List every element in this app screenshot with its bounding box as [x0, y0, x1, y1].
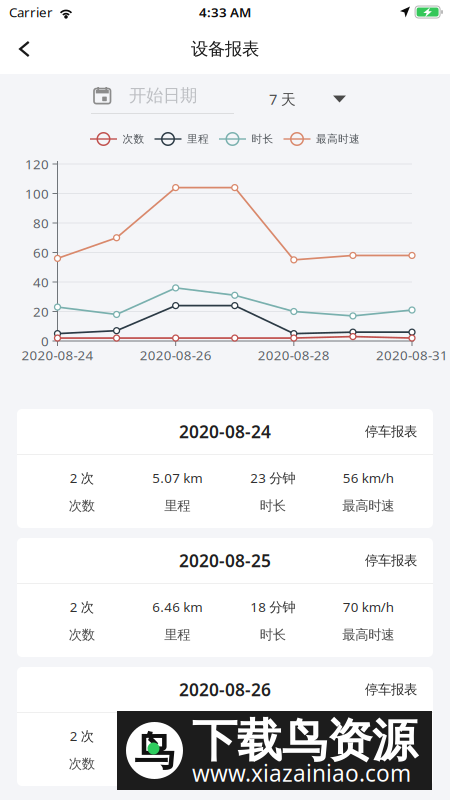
staticText: 开始日期 [129, 85, 197, 106]
staticText: 2 次 [70, 598, 94, 616]
staticText: 停车报表 [365, 681, 417, 698]
staticText: 时长 [260, 498, 286, 514]
staticText: 次数 [69, 498, 95, 514]
staticText: 100 [25, 185, 49, 202]
staticText: 2020-08-25 [179, 549, 271, 572]
staticText: 60 [33, 244, 49, 261]
staticText: 0 [41, 332, 49, 350]
button[interactable]: Back [0, 29, 45, 69]
button[interactable]: 开始日期 [91, 84, 234, 114]
button[interactable]: 2020-08-24 [17, 409, 433, 528]
staticText: 最高时速 [342, 498, 394, 514]
staticText: 最高时速 [342, 627, 394, 643]
staticText: 80 [33, 214, 49, 232]
staticText: 2020-08-24 [179, 420, 271, 443]
staticText: www.xiazainiao.com [192, 758, 411, 788]
staticText: 18 分钟 [250, 598, 295, 616]
staticText: 23 分钟 [250, 469, 295, 487]
staticText: 70 km/h [343, 598, 394, 616]
staticText: 里程 [187, 132, 209, 145]
staticText: 次数 [122, 132, 144, 145]
staticText: 时长 [260, 756, 286, 772]
staticText: 5.10 km [152, 727, 202, 745]
staticText: 5.07 km [152, 469, 202, 487]
staticText: 7 天 [269, 89, 296, 109]
staticText: 2020-08-26 [140, 346, 212, 364]
staticText: 最高时速 [316, 132, 360, 145]
button[interactable]: 2020-08-25 [17, 538, 433, 657]
staticText: 鸟 [134, 727, 174, 776]
staticText: 停车报表 [365, 552, 417, 569]
button[interactable]: 7 天 [269, 84, 346, 114]
staticText: 里程 [164, 756, 190, 772]
staticText: 时长 [251, 132, 273, 145]
staticText: 2020-08-31 [376, 346, 448, 364]
button[interactable]: 2020-08-26 [17, 667, 433, 786]
staticText: 下载鸟资源 [192, 713, 417, 769]
staticText: 里程 [164, 627, 190, 643]
staticText: 次数 [69, 627, 95, 643]
staticText: 4:33 AM [199, 3, 251, 21]
staticText: 60 km/h [343, 727, 394, 745]
staticText: Carrier [9, 3, 53, 21]
staticText: 120 [25, 155, 49, 173]
staticText: 最高时速 [342, 756, 394, 772]
staticText: 里程 [164, 498, 190, 514]
staticText: 20 分钟 [250, 727, 295, 745]
staticText: 20 [33, 303, 49, 320]
staticText: 2020-08-24 [21, 346, 93, 364]
staticText: 2 次 [70, 469, 94, 487]
staticText: 2020-08-26 [179, 678, 271, 701]
staticText: 时长 [260, 627, 286, 643]
staticText: 设备报表 [191, 38, 259, 60]
staticText: 56 km/h [343, 469, 394, 487]
staticText: 次数 [69, 756, 95, 772]
staticText: 2020-08-28 [258, 346, 330, 364]
staticText: 40 [33, 273, 49, 291]
staticText: 2 次 [70, 727, 94, 745]
staticText: 6.46 km [152, 598, 202, 616]
staticText: 停车报表 [365, 423, 417, 440]
